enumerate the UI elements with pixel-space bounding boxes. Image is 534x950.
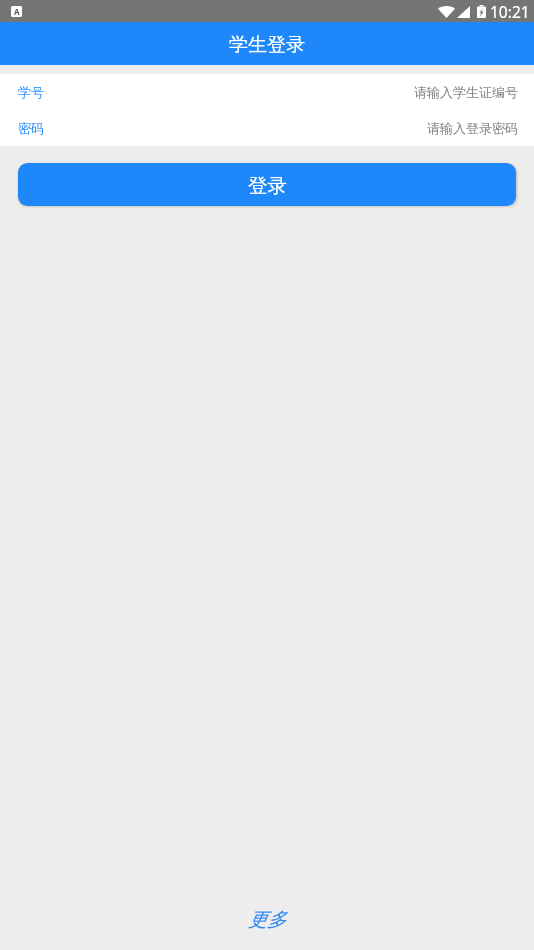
button[interactable]: 更多 xyxy=(0,900,534,940)
staticText: 10:21 xyxy=(490,1,530,22)
button[interactable]: 密码 xyxy=(0,110,534,146)
staticText: 学号 xyxy=(18,84,44,100)
button[interactable]: 登录 xyxy=(18,163,516,206)
staticText: A xyxy=(14,6,20,17)
button[interactable]: 学号 xyxy=(0,74,534,110)
staticText: 更多 xyxy=(248,908,286,932)
other: Battery charging xyxy=(477,5,486,18)
other: Wi-Fi xyxy=(438,5,455,18)
staticText: 请输入登录密码 xyxy=(427,120,518,136)
staticText: 学生登录 xyxy=(229,33,305,57)
other: Mobile signal xyxy=(457,6,470,18)
staticText: 密码 xyxy=(18,120,44,136)
staticText: 请输入学生证编号 xyxy=(414,84,518,100)
staticText: 登录 xyxy=(248,173,287,198)
